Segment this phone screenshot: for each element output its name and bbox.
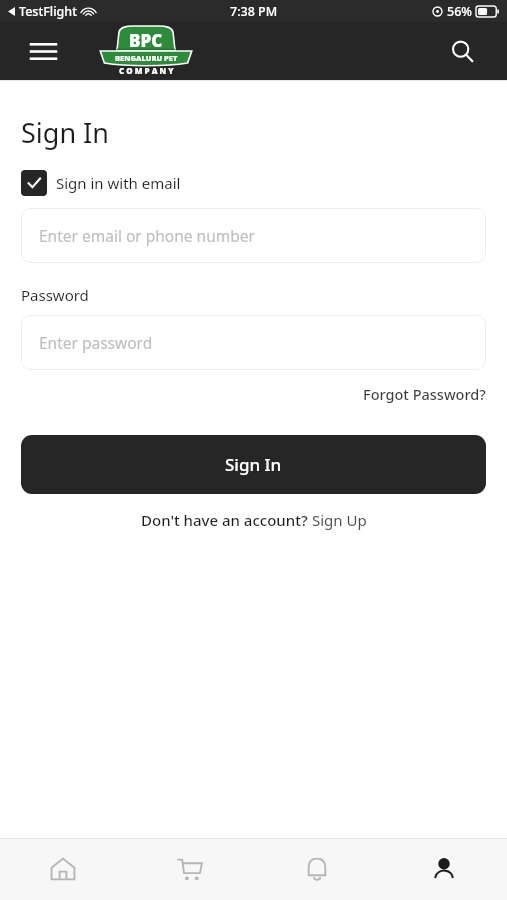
button[interactable]: Enter email or phone number <box>21 208 486 263</box>
staticText: Forgot Password? <box>363 384 486 404</box>
button[interactable]: Sign In <box>21 435 486 494</box>
staticText: Sign In <box>21 114 109 151</box>
button[interactable]: Don't have an account? <box>21 510 486 530</box>
staticText: Enter email or phone number <box>39 225 255 246</box>
staticText: Don't have an account? <box>141 510 312 530</box>
staticText: BPC <box>129 29 163 52</box>
staticText: BENGALURU PET <box>115 53 178 63</box>
staticText: 56% <box>447 3 472 20</box>
staticText: Sign In <box>225 453 282 476</box>
button[interactable]: Cart <box>126 838 253 900</box>
staticText: C O M P A N Y <box>119 65 174 76</box>
button[interactable]: Sign in with email <box>21 170 181 196</box>
button[interactable]: Profile <box>380 838 507 900</box>
staticText: 7:38 PM <box>230 3 278 20</box>
staticText: Enter password <box>39 332 153 353</box>
staticText: TestFlight <box>19 3 77 20</box>
button[interactable]: Enter password <box>21 315 486 370</box>
button[interactable]: Notifications <box>253 838 380 900</box>
staticText: Sign in with email <box>56 173 181 193</box>
button[interactable]: Menu <box>27 35 59 67</box>
button[interactable]: Home <box>0 838 126 900</box>
staticText: Password <box>21 285 89 305</box>
staticText: Sign Up <box>312 510 367 530</box>
button[interactable]: Forgot Password? <box>363 384 486 404</box>
button[interactable]: Search <box>445 34 479 68</box>
